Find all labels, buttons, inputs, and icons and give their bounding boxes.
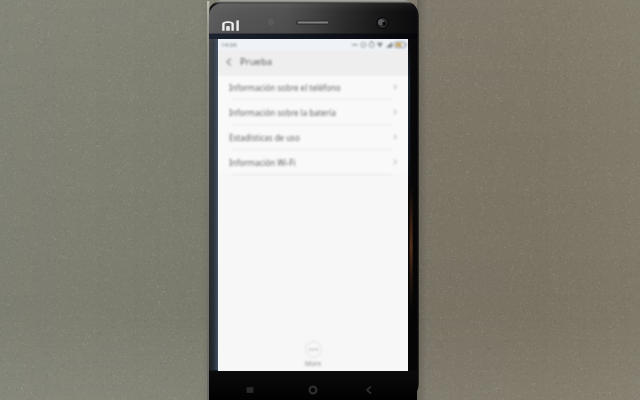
staticText: Prueba xyxy=(240,55,273,68)
staticText: Información sobre el teléfono xyxy=(229,82,341,93)
button[interactable]: Home xyxy=(295,371,331,400)
button[interactable]: Información sobre el teléfono xyxy=(218,75,408,99)
staticText: Información sobre la batería xyxy=(229,107,336,118)
staticText: Estadísticas de uso xyxy=(229,132,300,143)
button[interactable]: Recent apps xyxy=(232,371,268,400)
button[interactable]: Estadísticas de uso xyxy=(218,125,408,149)
staticText: 14:04 xyxy=(221,41,237,49)
button[interactable]: Back xyxy=(351,371,387,400)
button[interactable]: Información sobre la batería xyxy=(218,100,408,124)
button[interactable]: Información Wi-Fi xyxy=(218,150,408,174)
staticText: Información Wi-Fi xyxy=(229,157,296,168)
button[interactable]: Back xyxy=(218,51,240,73)
staticText: More xyxy=(305,359,322,368)
button[interactable]: More xyxy=(305,341,322,368)
